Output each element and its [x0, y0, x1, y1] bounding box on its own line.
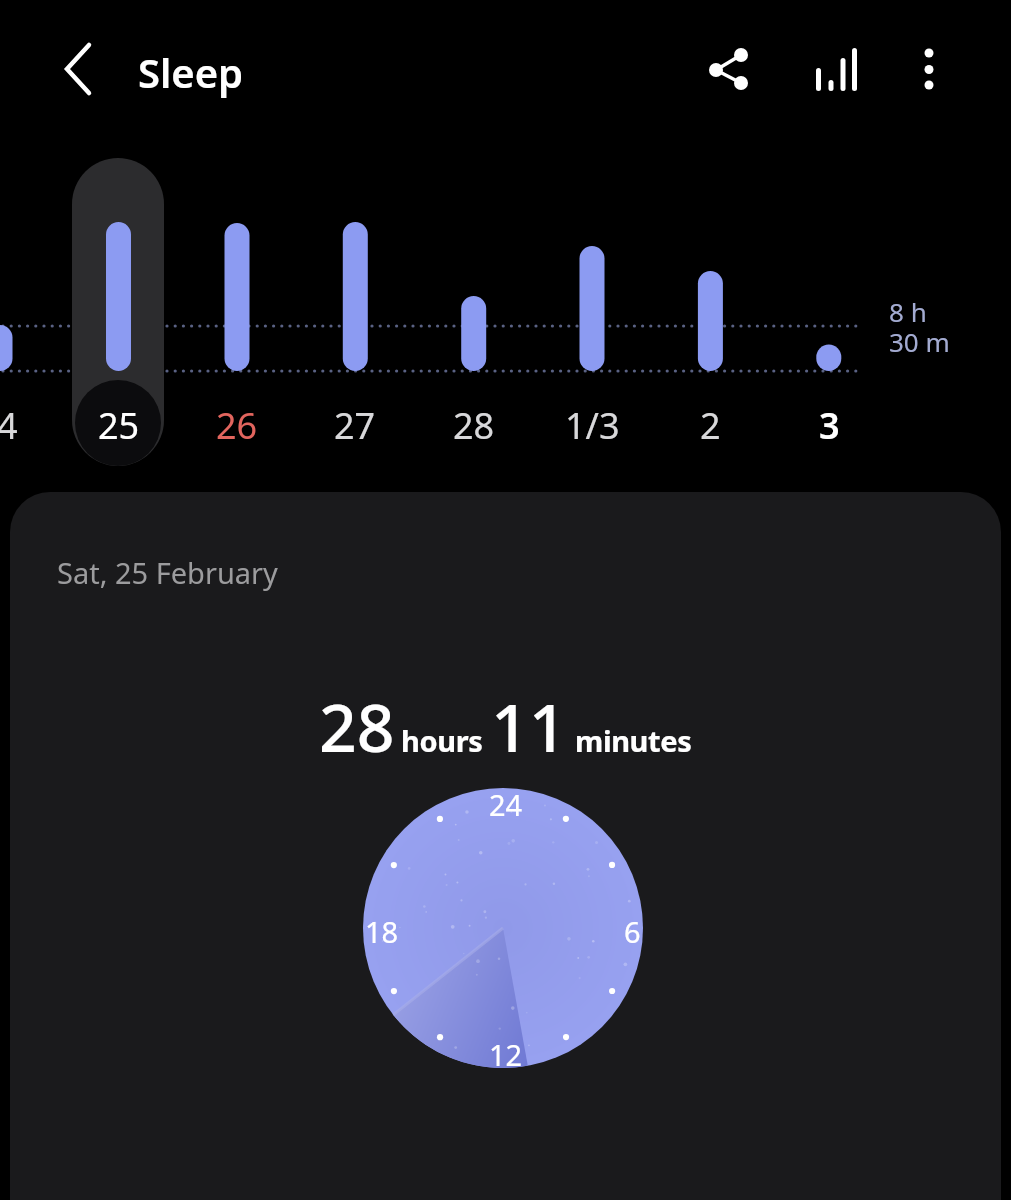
staticText: 27: [334, 401, 376, 447]
staticText: 28: [319, 681, 395, 771]
staticText: 18: [365, 912, 399, 951]
staticText: 2: [700, 401, 721, 447]
staticText: 24: [489, 785, 523, 824]
button[interactable]: 28: [429, 401, 519, 447]
staticText: 12: [489, 1035, 523, 1074]
staticText: Sat, 25 February: [57, 553, 278, 592]
button[interactable]: 4: [0, 401, 37, 447]
button[interactable]: 1/3: [547, 401, 637, 447]
button[interactable]: 25: [74, 401, 164, 447]
staticText: 8 h 30 m: [889, 294, 950, 359]
button[interactable]: [10, 492, 1001, 1200]
staticText: 25: [98, 401, 140, 447]
staticText: 4: [0, 401, 18, 447]
button[interactable]: [363, 788, 643, 1068]
staticText: Sleep: [138, 45, 244, 99]
button[interactable]: [806, 40, 862, 96]
button[interactable]: 2: [665, 401, 755, 447]
staticText: 6: [624, 912, 641, 951]
staticText: 28: [453, 401, 495, 447]
button[interactable]: [48, 38, 108, 100]
button[interactable]: [702, 42, 756, 98]
button[interactable]: 27: [310, 401, 400, 447]
staticText: 26: [216, 401, 258, 447]
staticText: hours: [401, 721, 483, 760]
staticText: minutes: [575, 721, 692, 760]
staticText: 3: [819, 401, 840, 447]
staticText: 11: [491, 681, 567, 771]
button[interactable]: 26: [192, 401, 282, 447]
button[interactable]: 3: [784, 401, 874, 447]
staticText: 1/3: [565, 401, 620, 447]
button[interactable]: [905, 40, 953, 96]
